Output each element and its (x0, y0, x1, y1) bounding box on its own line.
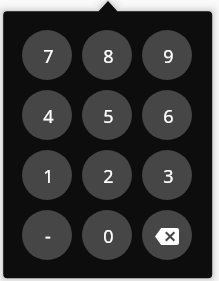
button[interactable]: 3 (142, 150, 192, 200)
button[interactable]: 0 (82, 210, 132, 260)
button[interactable]: 6 (142, 90, 192, 140)
staticText: 9 (163, 44, 174, 69)
staticText: 4 (43, 104, 54, 129)
button[interactable]: 1 (22, 150, 72, 200)
button[interactable]: 4 (22, 90, 72, 140)
staticText: 1 (43, 164, 54, 189)
button[interactable]: 9 (142, 30, 192, 80)
staticText: 7 (43, 44, 54, 69)
button[interactable]: 7 (22, 30, 72, 80)
button[interactable]: 5 (82, 90, 132, 140)
staticText: 5 (103, 104, 114, 129)
button[interactable]: - (22, 210, 72, 260)
button[interactable]: 8 (82, 30, 132, 80)
staticText: - (45, 224, 51, 249)
button[interactable]: Backspace (142, 210, 192, 260)
staticText: 6 (163, 104, 174, 129)
staticText: 8 (103, 44, 114, 69)
staticText: 2 (103, 164, 114, 189)
staticText: 3 (163, 164, 174, 189)
staticText: 0 (103, 224, 114, 249)
button[interactable]: 2 (82, 150, 132, 200)
